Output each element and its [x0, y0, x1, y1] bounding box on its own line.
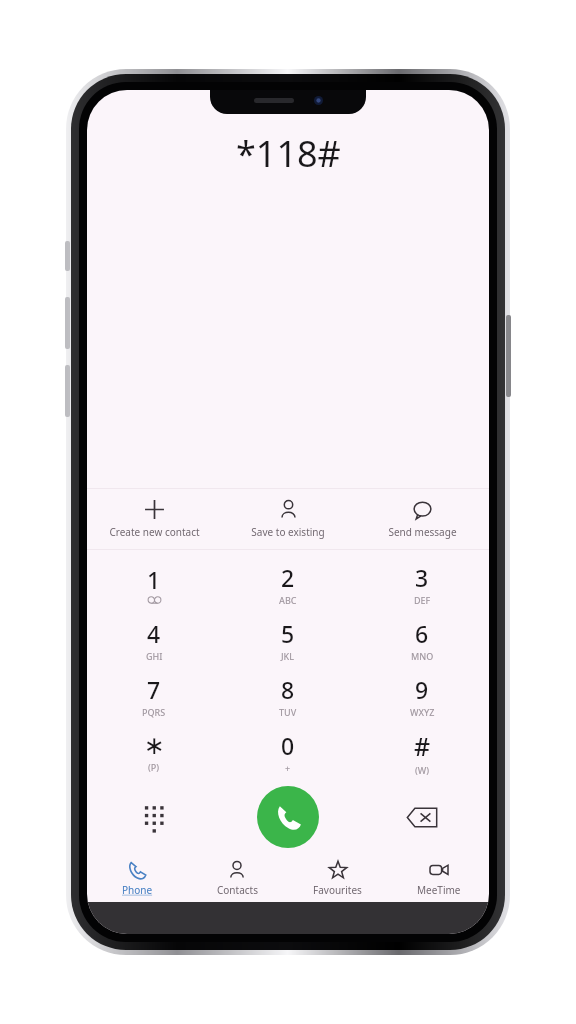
staticText: 3 — [415, 562, 429, 593]
staticText: WXYZ — [410, 706, 435, 718]
button[interactable]: Hide dialpad — [87, 780, 221, 854]
button[interactable]: MeeTime — [388, 854, 489, 902]
staticText: Favourites — [313, 883, 362, 897]
button[interactable]: Send message — [355, 489, 489, 549]
button[interactable]: Call — [257, 786, 319, 848]
staticText: 1 — [147, 564, 161, 595]
button[interactable]: 3 — [355, 556, 489, 612]
staticText: (P) — [148, 761, 160, 773]
button[interactable]: 9 — [355, 668, 489, 724]
staticText: GHI — [146, 650, 163, 662]
staticText: DEF — [414, 594, 431, 606]
staticText: MeeTime — [417, 883, 461, 897]
staticText: Save to existing — [251, 525, 325, 539]
staticText: 7 — [147, 674, 161, 705]
staticText: ABC — [279, 594, 297, 606]
button[interactable]: 5 — [221, 612, 355, 668]
button[interactable]: # — [355, 724, 489, 780]
button[interactable]: Create new contact — [87, 489, 221, 549]
button[interactable]: Backspace — [355, 780, 489, 854]
button[interactable]: 1 — [87, 556, 221, 612]
staticText: + — [285, 762, 291, 774]
button[interactable]: Favourites — [287, 854, 388, 902]
button[interactable]: Phone — [87, 854, 187, 902]
staticText: 0 — [281, 730, 295, 761]
staticText: Create new contact — [109, 525, 200, 539]
button[interactable]: 7 — [87, 668, 221, 724]
staticText: # — [414, 729, 431, 763]
staticText: 4 — [147, 618, 161, 649]
button[interactable]: ∗ — [87, 724, 221, 780]
staticText: Send message — [388, 525, 457, 539]
staticText: (W) — [415, 764, 430, 776]
staticText: TUV — [279, 706, 297, 718]
button[interactable]: 6 — [355, 612, 489, 668]
button[interactable]: 0 — [221, 724, 355, 780]
staticText: MNO — [411, 650, 434, 662]
staticText: 5 — [281, 618, 295, 649]
button[interactable]: 2 — [221, 556, 355, 612]
staticText: 2 — [281, 562, 295, 593]
staticText: 9 — [415, 674, 429, 705]
staticText: Phone — [122, 883, 153, 897]
button[interactable]: 8 — [221, 668, 355, 724]
staticText: Contacts — [217, 883, 258, 897]
staticText: 8 — [281, 674, 295, 705]
staticText: *118# — [236, 129, 341, 178]
button[interactable]: 4 — [87, 612, 221, 668]
staticText: JKL — [281, 650, 295, 662]
staticText: 6 — [415, 618, 429, 649]
staticText: ∗ — [144, 731, 165, 760]
button[interactable]: Save to existing — [221, 489, 355, 549]
staticText: PQRS — [142, 706, 166, 718]
button[interactable]: Contacts — [187, 854, 287, 902]
